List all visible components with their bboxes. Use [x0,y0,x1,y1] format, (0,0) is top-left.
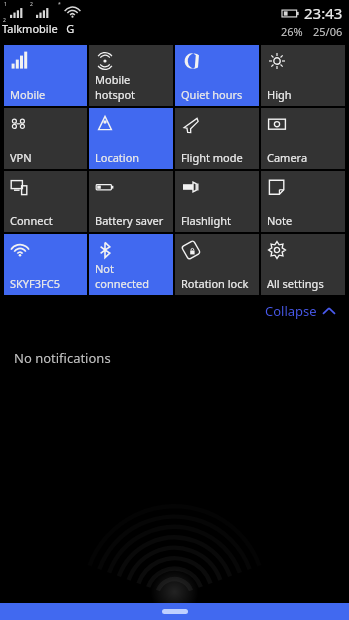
staticText: VPN [10,150,32,165]
staticText: SKYF3FC5 [10,276,61,291]
staticText: Talkmobile G [2,21,75,36]
button[interactable]: Note [261,171,345,232]
button[interactable]: SKYF3FC5 [4,234,87,295]
staticText: * [58,1,61,8]
staticText: No notifications [14,349,111,367]
staticText: Quiet hours [181,87,243,102]
staticText: 1 [4,1,7,8]
button[interactable]: Battery saver [89,171,173,232]
button[interactable]: Connect [4,171,87,232]
staticText: Mobile [95,72,131,87]
staticText: Flashlight [181,213,231,228]
staticText: High [267,87,292,102]
button[interactable]: Flight mode [175,108,259,169]
staticText: Flight mode [181,150,243,165]
button[interactable]: Not [89,234,173,295]
button[interactable]: VPN [4,108,87,169]
staticText: hotspot [95,87,136,102]
staticText: Rotation lock [181,276,249,291]
staticText: Not [95,261,114,276]
staticText: 2 [3,17,6,24]
staticText: 25/06 [313,24,343,38]
staticText: 26% [281,24,303,38]
staticText: connected [95,276,149,291]
staticText: 2 [30,1,33,8]
staticText: Note [267,213,293,228]
button[interactable]: Collapse [261,298,339,324]
button[interactable]: Quiet hours [175,45,259,106]
button[interactable]: Home [162,609,188,614]
button[interactable]: Camera [261,108,345,169]
button[interactable]: All settings [261,234,345,295]
staticText: 23:43 [304,3,343,23]
staticText: Camera [267,150,308,165]
button[interactable]: Mobile [4,45,87,106]
staticText: Location [95,150,140,165]
staticText: All settings [267,276,324,291]
button[interactable]: Rotation lock [175,234,259,295]
button[interactable]: High [261,45,345,106]
button[interactable]: Location [89,108,173,169]
staticText: Collapse [265,302,317,320]
button[interactable]: Flashlight [175,171,259,232]
staticText: Mobile [10,87,46,102]
staticText: Connect [10,213,53,228]
button[interactable]: Mobile [89,45,173,106]
staticText: Battery saver [95,213,164,228]
